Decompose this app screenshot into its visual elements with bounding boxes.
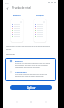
button[interactable]: [11, 19, 23, 42]
staticText: realizadas durante el periodo.: [15, 66, 41, 68]
staticText: Con este informe podras ver todos los: [15, 73, 48, 75]
staticText: Prueba de nivel: [12, 6, 31, 10]
staticText: detalles de cada prueba realizada.: [15, 75, 44, 77]
staticText: Aplicar: [27, 86, 36, 90]
staticText: Incluye un resumen general con los datos: [15, 62, 51, 64]
button[interactable]: Back: [3, 5, 12, 11]
staticText: ahora.: [6, 48, 12, 51]
button[interactable]: Avanzado: [6, 70, 56, 77]
staticText: Basico: [15, 59, 23, 62]
button[interactable]: Back: [15, 100, 18, 103]
button[interactable]: Basico: [6, 59, 56, 68]
staticText: Selecciona el tipo de informe que quiere…: [6, 45, 51, 48]
button[interactable]: Home: [29, 100, 32, 103]
staticText: 9:41: [5, 2, 9, 4]
button[interactable]: Global: [36, 13, 44, 16]
button[interactable]: Basico: [13, 13, 21, 16]
button[interactable]: Aplicar: [10, 85, 52, 90]
button[interactable]: [34, 19, 46, 42]
button[interactable]: Recents: [44, 100, 47, 103]
staticText: Opciones: [6, 53, 15, 56]
staticText: principales de cada una de las pruebas: [15, 64, 48, 66]
staticText: Avanzado: [15, 70, 27, 73]
staticText: Basico: [13, 13, 21, 16]
staticText: Global: [36, 13, 44, 16]
